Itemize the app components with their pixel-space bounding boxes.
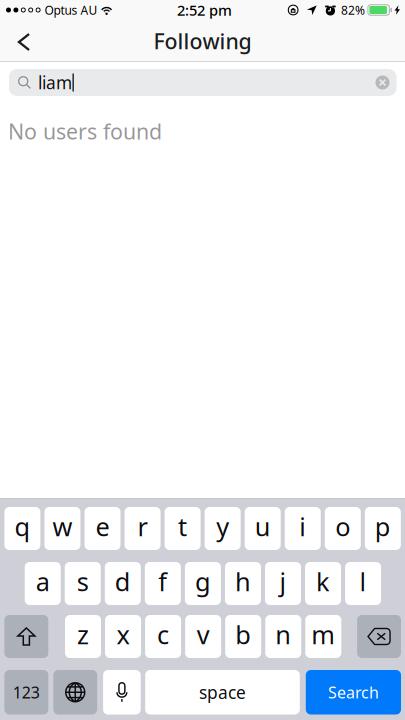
button[interactable]: r <box>125 507 161 550</box>
staticText: liam <box>38 71 72 94</box>
button[interactable]: i <box>285 507 321 550</box>
button[interactable]: z <box>65 615 101 658</box>
button[interactable]: j <box>265 562 301 605</box>
button[interactable]: w <box>44 507 80 550</box>
staticText: q <box>14 510 30 543</box>
button[interactable]: d <box>105 562 141 605</box>
staticText: m <box>311 618 335 651</box>
staticText: y <box>216 510 229 543</box>
button[interactable]: k <box>305 562 341 605</box>
staticText: 2:52 pm <box>177 0 232 20</box>
staticText: Following <box>153 27 251 55</box>
staticText: o <box>335 510 350 543</box>
button[interactable]: g <box>185 562 221 605</box>
staticText: u <box>255 510 271 543</box>
button[interactable]: p <box>365 507 401 550</box>
button[interactable]: y <box>205 507 241 550</box>
staticText: space <box>199 681 246 704</box>
button[interactable]: Back <box>0 20 48 61</box>
staticText: e <box>95 510 109 543</box>
button[interactable]: Dictate <box>103 670 141 714</box>
staticText: k <box>316 565 330 598</box>
staticText: i <box>299 510 306 543</box>
button[interactable]: t <box>165 507 201 550</box>
button[interactable]: l <box>345 562 381 605</box>
button[interactable]: e <box>84 507 120 550</box>
staticText: d <box>115 565 131 598</box>
button[interactable]: u <box>245 507 281 550</box>
staticText: w <box>52 510 72 543</box>
button[interactable]: Clear text <box>368 69 396 95</box>
staticText: n <box>275 618 291 651</box>
staticText: f <box>158 565 167 598</box>
staticText: c <box>157 618 169 651</box>
button[interactable]: h <box>225 562 261 605</box>
staticText: j <box>279 565 286 598</box>
staticText: r <box>138 510 148 543</box>
button[interactable]: 123 <box>4 670 48 714</box>
button[interactable]: a <box>25 562 61 605</box>
button[interactable]: x <box>105 615 141 658</box>
button[interactable]: f <box>145 562 181 605</box>
staticText: 123 <box>13 682 40 703</box>
button[interactable]: c <box>145 615 181 658</box>
staticText: Search <box>328 682 379 703</box>
button[interactable]: m <box>305 615 341 658</box>
button[interactable]: Search <box>306 670 401 714</box>
button[interactable]: b <box>225 615 261 658</box>
staticText: Optus AU <box>45 2 98 18</box>
button[interactable]: v <box>185 615 221 658</box>
staticText: t <box>178 510 187 543</box>
staticText: x <box>116 618 129 651</box>
staticText: a <box>36 565 50 598</box>
staticText: g <box>195 565 211 598</box>
button[interactable]: space <box>145 670 300 714</box>
button[interactable]: Delete <box>357 615 401 658</box>
staticText: b <box>235 618 251 651</box>
button[interactable]: o <box>325 507 361 550</box>
staticText: s <box>77 565 89 598</box>
staticText: v <box>197 618 210 651</box>
staticText: 82% <box>341 2 365 18</box>
button[interactable]: q <box>4 507 40 550</box>
button[interactable]: n <box>265 615 301 658</box>
button[interactable]: Next keyboard <box>53 670 97 714</box>
staticText: l <box>360 565 367 598</box>
button[interactable]: s <box>65 562 101 605</box>
staticText: p <box>375 510 391 543</box>
staticText: h <box>235 565 251 598</box>
button[interactable]: Shift <box>4 615 48 658</box>
staticText: z <box>77 618 89 651</box>
staticText: No users found <box>8 117 162 145</box>
